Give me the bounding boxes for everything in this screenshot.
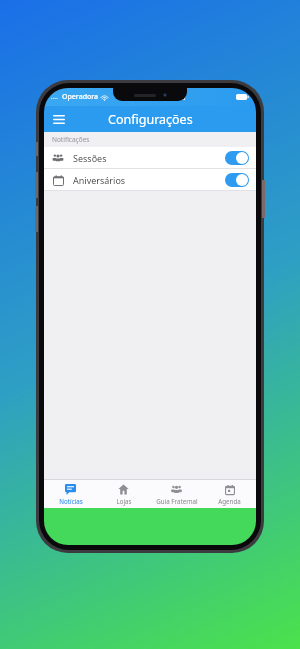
button[interactable]: Menu	[48, 108, 70, 130]
staticText: Lojas	[116, 497, 132, 505]
button[interactable]: Aniversários toggle	[225, 173, 249, 187]
button[interactable]: Sessões toggle	[225, 151, 249, 165]
staticText: Operadora	[62, 92, 99, 102]
staticText: Notificações	[52, 135, 90, 144]
staticText: Guia Fraternal	[156, 497, 198, 505]
button[interactable]: Agenda	[203, 480, 256, 508]
staticText: Aniversários	[73, 174, 126, 186]
button[interactable]: Sessões	[44, 147, 256, 168]
button[interactable]: Aniversários	[44, 169, 256, 190]
button[interactable]: Notícias	[44, 480, 97, 508]
staticText: Agenda	[218, 497, 241, 505]
staticText: Sessões	[73, 152, 107, 164]
button[interactable]: Lojas	[97, 480, 150, 508]
staticText: Notícias	[59, 497, 83, 505]
button[interactable]: Guia Fraternal	[150, 480, 203, 508]
staticText: Configurações	[108, 111, 193, 128]
staticText: 9:13 PM	[157, 92, 186, 102]
